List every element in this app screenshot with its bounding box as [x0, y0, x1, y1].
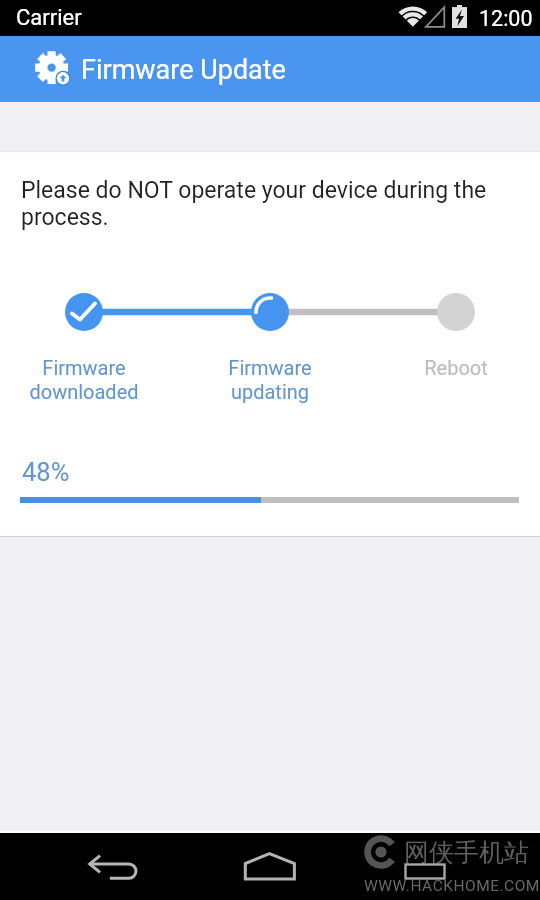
staticText: Firmware downloaded — [0, 356, 174, 404]
staticText: 48% — [22, 457, 70, 487]
staticText: WWW.HACKHOME.COM — [364, 877, 540, 895]
staticText: Firmware Update — [81, 54, 286, 86]
staticText: Firmware updating — [180, 356, 360, 404]
button[interactable]: Home — [240, 845, 300, 890]
staticText: Please do NOT operate your device during… — [21, 177, 499, 231]
staticText: Carrier — [16, 5, 82, 31]
staticText: 12:00 — [479, 6, 533, 31]
button[interactable]: Back — [78, 841, 138, 891]
button[interactable]: Firmware update — [34, 50, 72, 88]
staticText: Reboot — [366, 356, 540, 379]
staticText: 网侠手机站 — [404, 837, 529, 868]
